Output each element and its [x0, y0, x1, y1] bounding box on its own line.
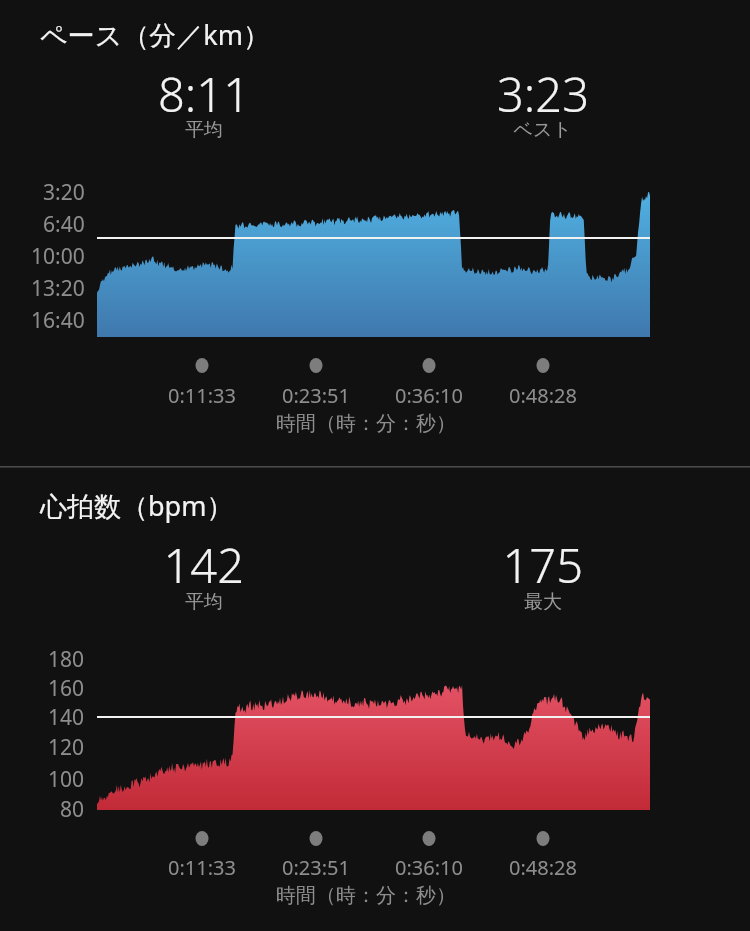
button[interactable]: Workout pace and heart rate charts: [0, 0, 750, 931]
